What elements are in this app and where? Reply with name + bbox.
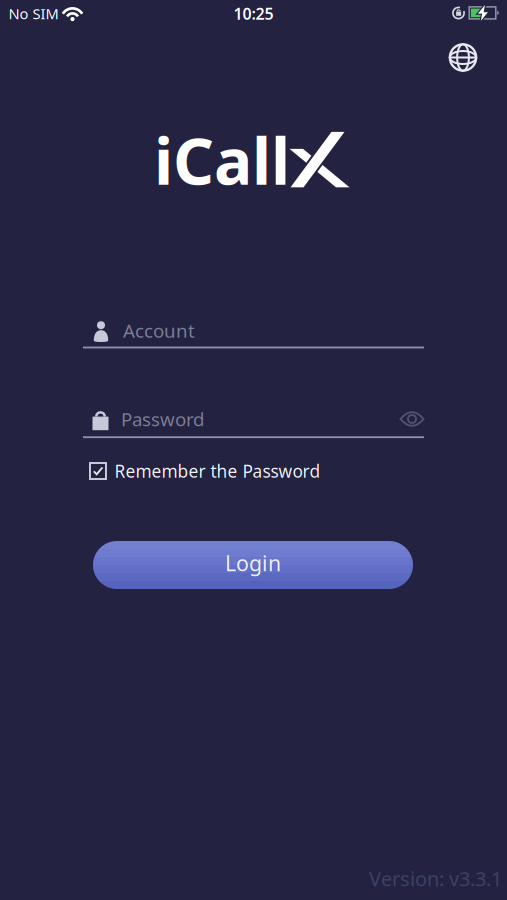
button[interactable]: Remember the Password [89, 459, 319, 483]
staticText: Version: v3.3.1 [369, 865, 502, 892]
staticText: Account [123, 318, 195, 343]
staticText: Password [121, 407, 204, 431]
button[interactable]: Login [93, 541, 413, 589]
button[interactable]: Account [83, 311, 424, 349]
staticText: 10:25 [233, 3, 273, 24]
button[interactable]: Show password [393, 405, 430, 433]
staticText: No SIM [8, 4, 58, 23]
button[interactable]: Password [83, 399, 424, 439]
staticText: Remember the Password [114, 459, 320, 482]
staticText: Login [225, 549, 281, 577]
staticText: iCall [154, 117, 290, 202]
button[interactable]: Language [440, 35, 485, 80]
